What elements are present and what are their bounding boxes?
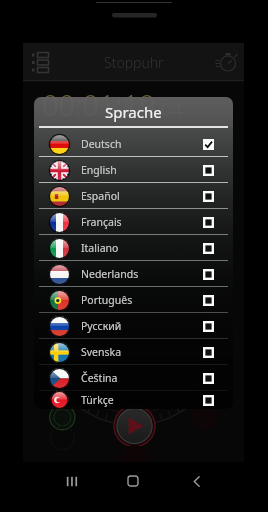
staticText: .04: [156, 96, 183, 122]
button[interactable]: Nederlands: [34, 261, 233, 287]
staticText: Русский: [81, 319, 122, 333]
button[interactable]: Recent apps: [58, 468, 84, 494]
staticText: Português: [81, 293, 133, 307]
staticText: Stoppuhr: [104, 53, 164, 72]
button[interactable]: Português: [34, 287, 233, 313]
button[interactable]: Italiano: [34, 235, 233, 261]
button[interactable]: Русский: [34, 313, 233, 339]
staticText: Español: [81, 189, 120, 203]
staticText: 00:01:19: [42, 85, 156, 124]
staticText: Deutsch: [81, 137, 122, 151]
button[interactable]: Deutsch: [34, 131, 233, 157]
staticText: Čeština: [81, 371, 118, 385]
staticText: Sprache: [105, 102, 162, 122]
button[interactable]: Svenska: [34, 339, 233, 365]
button[interactable]: Türkçe: [34, 391, 233, 409]
staticText: Français: [81, 215, 122, 229]
button[interactable]: Français: [34, 209, 233, 235]
button[interactable]: Español: [34, 183, 233, 209]
staticText: English: [81, 163, 117, 177]
button[interactable]: English: [34, 157, 233, 183]
staticText: Türkçe: [81, 393, 114, 407]
button[interactable]: Čeština: [34, 365, 233, 391]
button[interactable]: Stopwatch: [215, 50, 239, 74]
button[interactable]: Laps: [28, 49, 54, 75]
staticText: Nederlands: [81, 267, 139, 281]
button[interactable]: Home: [120, 468, 146, 494]
staticText: Italiano: [81, 241, 119, 255]
button[interactable]: Back: [183, 468, 209, 494]
staticText: Svenska: [81, 345, 122, 359]
